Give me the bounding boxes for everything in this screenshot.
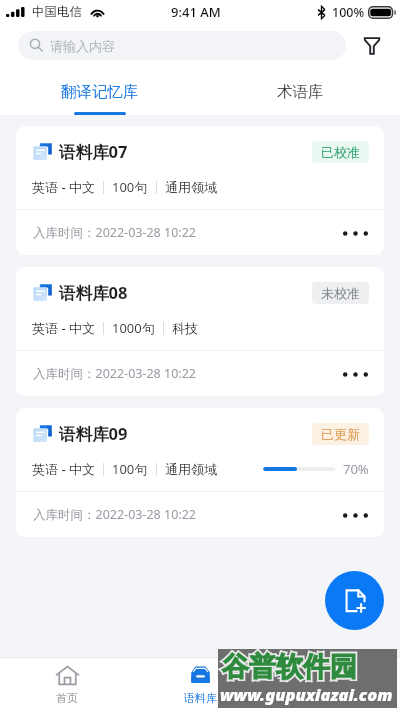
staticText: 100句 xyxy=(112,460,148,478)
staticText: 通用领域 xyxy=(165,179,217,195)
staticText: 入库时间：2022-03-28 10:22 xyxy=(33,506,196,523)
button[interactable]: 术语库 xyxy=(200,60,400,115)
staticText: 术语库 xyxy=(277,82,324,102)
button[interactable]: 我的 xyxy=(267,658,400,711)
button[interactable]: More options xyxy=(338,502,372,528)
staticText: 入库时间：2022-03-28 10:22 xyxy=(33,224,196,241)
staticText: 已更新 xyxy=(321,426,360,442)
staticText: 语料库 xyxy=(184,691,217,705)
staticText: 100句 xyxy=(112,178,148,196)
button[interactable]: 语料库07 xyxy=(16,126,384,255)
staticText: 首页 xyxy=(56,691,78,705)
staticText: 请输入内容 xyxy=(50,38,115,54)
staticText: 100% xyxy=(332,4,365,21)
staticText: 中国电信 xyxy=(32,4,82,20)
staticText: 我的 xyxy=(323,691,345,705)
staticText: 语料库08 xyxy=(59,281,128,304)
button[interactable]: 首页 xyxy=(0,658,134,711)
button[interactable]: 请输入内容 xyxy=(18,31,346,60)
staticText: 英语 - 中文 xyxy=(32,460,95,478)
staticText: 未校准 xyxy=(321,285,360,301)
button[interactable]: More options xyxy=(338,220,372,246)
staticText: 谷普软件园 xyxy=(222,650,357,684)
button[interactable]: 翻译记忆库 xyxy=(0,60,200,115)
staticText: 1000句 xyxy=(112,319,155,337)
button[interactable]: Filter xyxy=(357,31,387,60)
staticText: 入库时间：2022-03-28 10:22 xyxy=(33,365,196,382)
staticText: 语料库07 xyxy=(59,140,128,163)
staticText: 已校准 xyxy=(321,144,360,160)
staticText: www.gupuxiazai.com xyxy=(220,683,393,705)
staticText: 谷普软件园 xyxy=(222,650,357,684)
button[interactable]: 语料库09 xyxy=(16,408,384,537)
staticText: 英语 - 中文 xyxy=(32,178,95,196)
button[interactable]: 语料库08 xyxy=(16,267,384,396)
staticText: 科技 xyxy=(172,320,198,336)
staticText: 翻译记忆库 xyxy=(61,82,139,102)
staticText: 70% xyxy=(343,460,369,478)
staticText: 语料库09 xyxy=(59,422,128,445)
button[interactable]: 语料库 xyxy=(134,658,267,711)
button[interactable]: New corpus xyxy=(325,571,384,630)
staticText: 9:41 AM xyxy=(171,3,221,21)
button[interactable]: More options xyxy=(338,361,372,387)
staticText: 通用领域 xyxy=(165,461,217,477)
staticText: 英语 - 中文 xyxy=(32,319,95,337)
